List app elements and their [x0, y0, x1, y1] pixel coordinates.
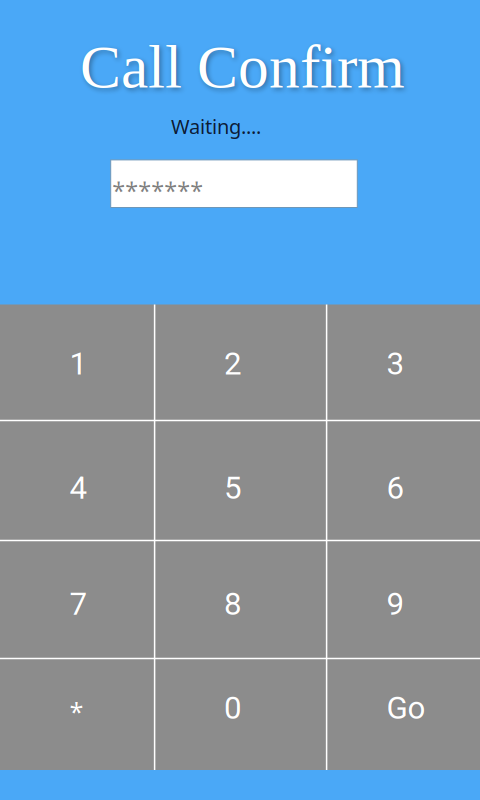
button[interactable]: Go — [387, 690, 426, 726]
staticText: 8 — [224, 586, 242, 622]
button[interactable]: 8 — [224, 586, 242, 622]
staticText: 4 — [69, 470, 87, 506]
button[interactable]: 5 — [224, 470, 242, 506]
button[interactable]: 1 — [69, 345, 87, 382]
staticText: Waiting.... — [171, 113, 261, 140]
staticText: Go — [387, 690, 426, 726]
staticText: 7 — [69, 586, 87, 622]
button[interactable]: 9 — [387, 586, 405, 622]
staticText: 5 — [224, 470, 242, 506]
button[interactable]: 4 — [69, 470, 87, 506]
button[interactable]: 7 — [69, 586, 87, 622]
button[interactable]: * — [69, 694, 83, 728]
staticText: 2 — [224, 345, 242, 382]
button[interactable]: 6 — [387, 470, 405, 506]
staticText: 9 — [387, 586, 405, 622]
staticText: ******* — [112, 174, 203, 206]
staticText: * — [69, 694, 83, 728]
staticText: 3 — [387, 345, 405, 382]
staticText: 6 — [387, 470, 405, 506]
staticText: 0 — [224, 690, 242, 726]
button[interactable]: 2 — [224, 345, 242, 382]
button[interactable]: 0 — [224, 690, 242, 726]
staticText: 1 — [69, 345, 87, 382]
button[interactable]: 3 — [387, 345, 405, 382]
staticText: Call Confirm — [80, 33, 405, 101]
